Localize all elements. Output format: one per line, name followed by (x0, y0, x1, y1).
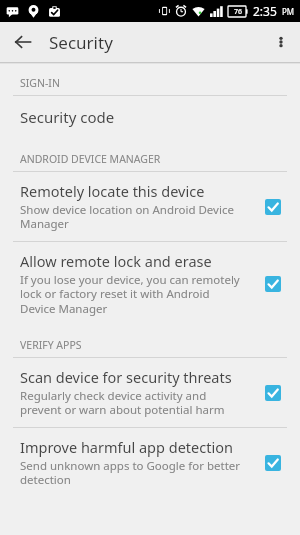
button[interactable]: Security code (0, 96, 300, 138)
staticText: Security (49, 31, 113, 54)
button[interactable]: Toggle (260, 194, 286, 220)
staticText: Allow remote lock and erase (20, 251, 212, 271)
staticText: Send unknown apps to Google for better d… (20, 458, 246, 488)
staticText: VERIFY APPS (20, 338, 82, 352)
button[interactable]: Back (8, 27, 38, 57)
button[interactable]: More options (266, 27, 296, 57)
button[interactable]: Allow remote lock and erase (0, 242, 300, 326)
button[interactable]: Toggle (260, 271, 286, 297)
button[interactable]: Improve harmful app detection (0, 428, 300, 497)
staticText: SIGN-IN (20, 76, 60, 90)
staticText: 2:35 (253, 3, 277, 19)
button[interactable]: Scan device for security threats (0, 358, 300, 427)
staticText: Security code (20, 107, 115, 127)
staticText: 76 (234, 7, 243, 17)
staticText: Show device location on Android Device M… (20, 202, 246, 232)
staticText: PM (282, 6, 295, 17)
staticText: Improve harmful app detection (20, 437, 233, 457)
staticText: Regularly check device activity and prev… (20, 388, 246, 418)
button[interactable]: Toggle (260, 380, 286, 406)
staticText: Remotely locate this device (20, 181, 205, 201)
button[interactable]: Remotely locate this device (0, 172, 300, 241)
button[interactable]: Toggle (260, 450, 286, 476)
staticText: Scan device for security threats (20, 367, 232, 387)
staticText: If you lose your device, you can remotel… (20, 272, 246, 317)
staticText: ANDROID DEVICE MANAGER (20, 152, 161, 166)
